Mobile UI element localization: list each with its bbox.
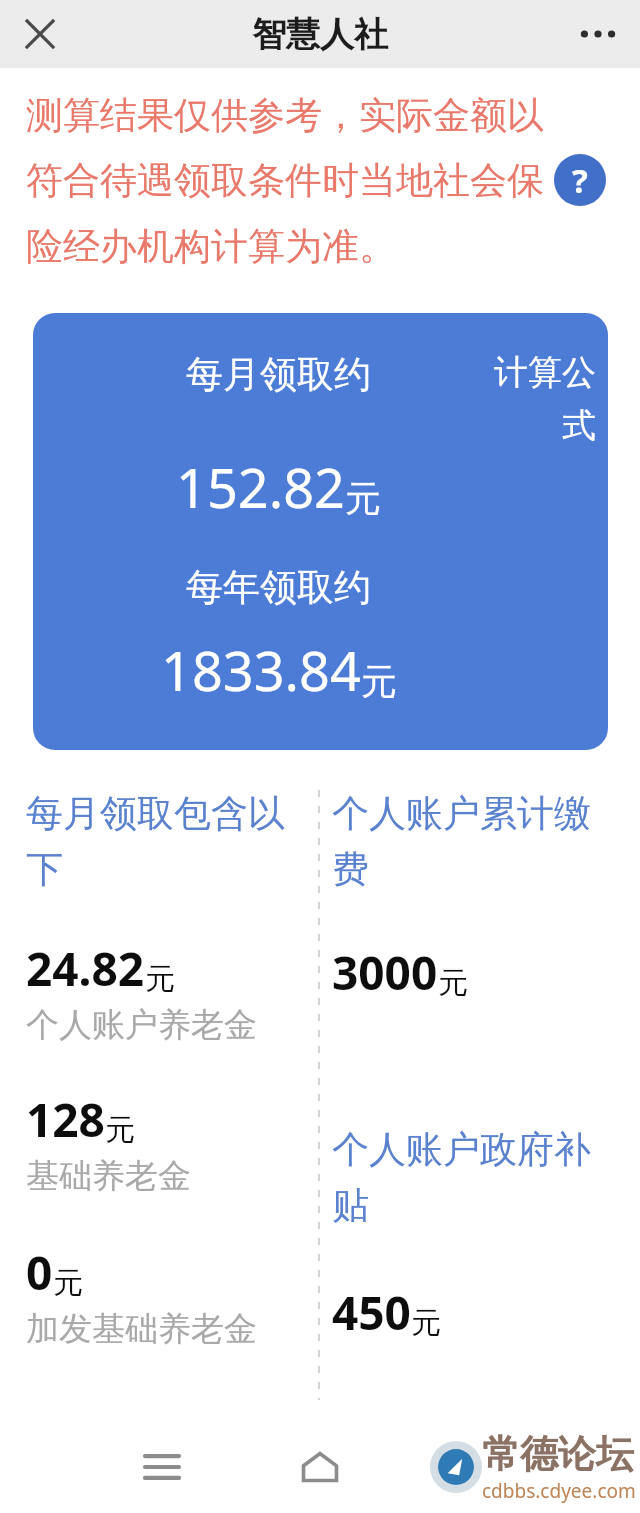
staticText: cdbbs.cdyee.com <box>482 1478 636 1504</box>
staticText: 加发基础养老金 <box>26 1308 257 1350</box>
staticText: 元 <box>145 960 175 998</box>
staticText: 元 <box>438 964 468 1002</box>
staticText: 3000 <box>332 941 438 1004</box>
staticText: 元 <box>53 1264 83 1302</box>
staticText: 计算公式 <box>480 351 596 447</box>
staticText: 个人账户累计缴费 <box>332 790 617 893</box>
staticText: 元 <box>105 1111 135 1149</box>
button[interactable]: 计算公式 <box>33 313 608 750</box>
button[interactable]: 菜单 <box>130 1435 194 1499</box>
staticText: 每年领取约 <box>186 564 371 611</box>
button[interactable]: 主页 <box>286 1433 354 1501</box>
button[interactable]: 帮助说明 <box>554 154 606 206</box>
staticText: 常德论坛 <box>482 1430 634 1478</box>
staticText: 元 <box>411 1304 441 1342</box>
staticText: 个人账户养老金 <box>26 1004 257 1046</box>
staticText: 1833.84 <box>161 633 361 707</box>
staticText: 基础养老金 <box>26 1155 191 1197</box>
staticText: 智慧人社 <box>252 13 388 56</box>
staticText: 128 <box>26 1088 105 1151</box>
staticText: 个人账户政府补贴 <box>332 1126 617 1229</box>
staticText: ? <box>572 158 588 203</box>
button[interactable]: 更多 <box>570 6 626 62</box>
staticText: 每月领取包含以下 <box>26 790 311 893</box>
staticText: 元 <box>361 659 397 704</box>
button[interactable]: 关闭 <box>12 6 68 62</box>
staticText: 152.82 <box>176 450 345 524</box>
staticText: 测算结果仅供参考，实际金额以符合待遇领取条件时当地社会保险经办机构计算为准。 <box>26 92 572 270</box>
staticText: 元 <box>345 476 381 521</box>
staticText: 24.82 <box>26 937 145 1000</box>
staticText: 0 <box>26 1241 53 1304</box>
staticText: 450 <box>332 1281 411 1344</box>
staticText: 每月领取约 <box>186 351 371 398</box>
